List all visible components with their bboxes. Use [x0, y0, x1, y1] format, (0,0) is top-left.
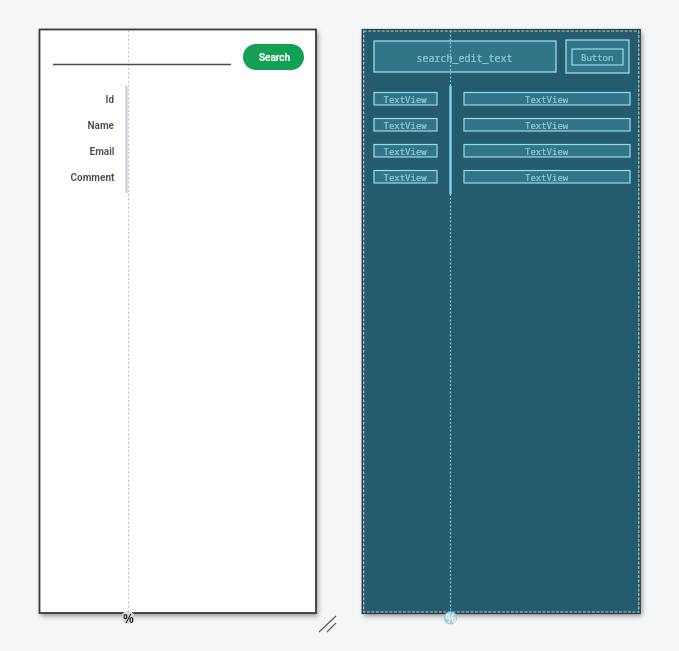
button[interactable]: Resize preview	[316, 612, 338, 634]
button[interactable]: Value TextView 4	[464, 170, 630, 183]
button[interactable]: Value TextView 2	[464, 118, 630, 131]
button[interactable]: Search	[243, 44, 304, 70]
button[interactable]: Guideline percent handle	[122, 611, 135, 624]
button[interactable]: Value TextView 3	[464, 144, 630, 157]
button[interactable]: Blueprint guideline percent handle	[444, 611, 457, 624]
button[interactable]: Value TextView 1	[464, 92, 630, 105]
button[interactable]: Label TextView 2	[374, 118, 437, 131]
button[interactable]: Button	[566, 40, 629, 73]
button[interactable]: Label TextView 3	[374, 144, 437, 157]
button[interactable]: Search input field	[53, 46, 231, 66]
button[interactable]: Label TextView 4	[374, 170, 437, 183]
button[interactable]: Label TextView 1	[374, 92, 437, 105]
button[interactable]: search_edit_text	[374, 41, 556, 72]
